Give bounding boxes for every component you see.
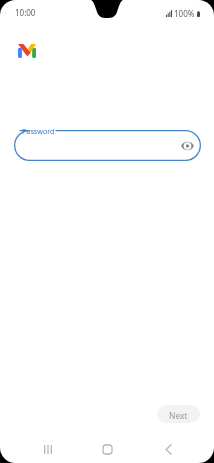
button[interactable]: Next [157,405,200,423]
button[interactable]: Recents [32,433,64,463]
staticText: Password [22,126,55,136]
button[interactable]: Home [91,433,123,463]
staticText: Next [169,410,188,422]
button[interactable]: Back [152,433,184,463]
staticText: 10:00 [15,7,36,18]
staticText: 100% [174,8,195,19]
button[interactable]: Show password [176,135,198,157]
button[interactable] [14,130,201,161]
